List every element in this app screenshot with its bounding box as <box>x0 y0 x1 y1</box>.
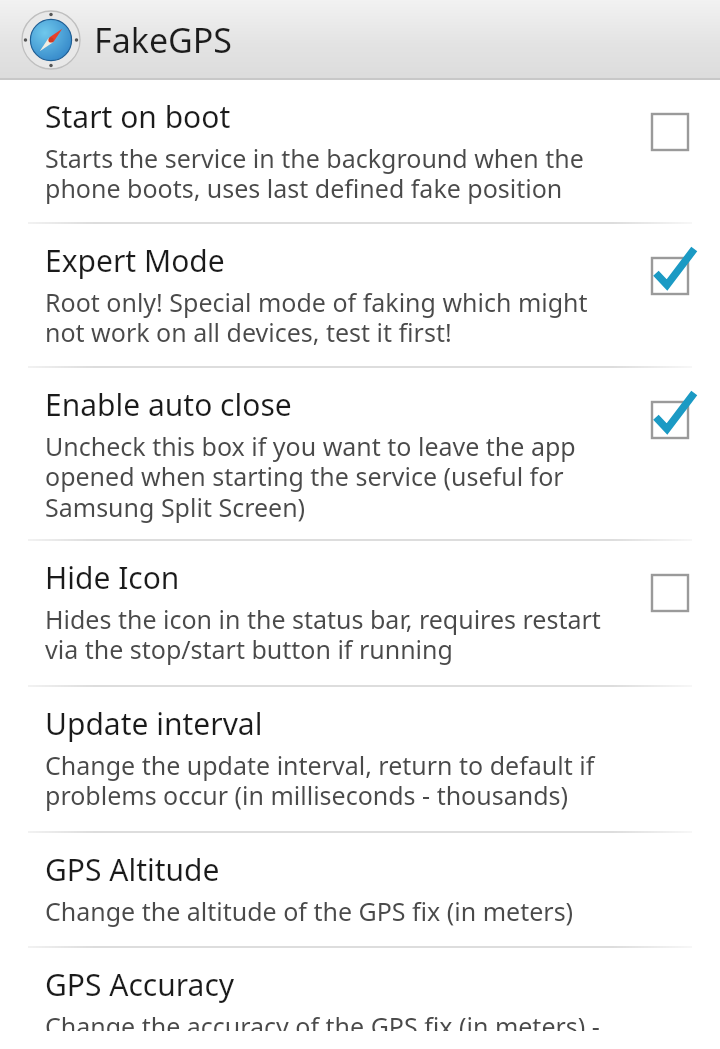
staticText: Enable auto close <box>45 384 292 425</box>
staticText: Uncheck this box if you want to leave th… <box>45 429 632 525</box>
staticText: Start on boot <box>45 96 231 137</box>
staticText: Update interval <box>45 703 263 744</box>
other: Unchecked <box>646 110 698 154</box>
staticText: Expert Mode <box>45 240 225 281</box>
other: Checked <box>646 254 698 298</box>
button[interactable]: Start on boot <box>0 80 720 222</box>
staticText: GPS Accuracy <box>45 964 235 1005</box>
staticText: Hides the icon in the status bar, requir… <box>45 602 632 667</box>
button[interactable]: Update interval <box>0 687 720 831</box>
staticText: Change the accuracy of the GPS fix (in m… <box>45 1009 632 1031</box>
other: Unchecked <box>646 571 698 615</box>
button[interactable]: Enable auto close <box>0 368 720 539</box>
staticText: GPS Altitude <box>45 849 220 890</box>
staticText: Change the update interval, return to de… <box>45 748 632 813</box>
staticText: Change the altitude of the GPS fix (in m… <box>45 894 574 928</box>
button[interactable]: Expert Mode <box>0 224 720 366</box>
staticText: Starts the service in the background whe… <box>45 141 632 206</box>
button[interactable]: Hide Icon <box>0 541 720 685</box>
button[interactable]: GPS Altitude <box>0 833 720 946</box>
staticText: Root only! Special mode of faking which … <box>45 285 632 350</box>
button[interactable]: GPS Accuracy <box>0 948 720 1049</box>
staticText: Hide Icon <box>45 557 180 598</box>
staticText: FakeGPS <box>94 17 233 63</box>
other: Checked <box>646 398 698 442</box>
